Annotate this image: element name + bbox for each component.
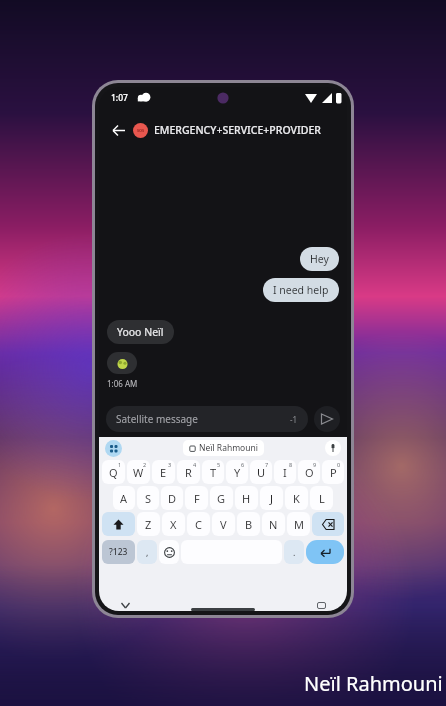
staticText: W xyxy=(133,465,144,480)
button[interactable]: I xyxy=(274,460,296,484)
button[interactable]: N xyxy=(262,512,285,536)
staticText: 1 xyxy=(118,461,122,468)
button[interactable]: C xyxy=(187,512,210,536)
button[interactable]: . xyxy=(284,540,304,564)
staticText: 9 xyxy=(313,461,317,468)
button[interactable]: E xyxy=(152,460,175,484)
staticText: Neïl Rahmouni xyxy=(199,442,258,454)
button[interactable]: A xyxy=(113,486,135,510)
button[interactable]: M xyxy=(287,512,310,536)
button[interactable]: T xyxy=(202,460,224,484)
staticText: J xyxy=(270,491,274,506)
button[interactable]: B xyxy=(237,512,260,536)
staticText: Hey xyxy=(310,252,329,266)
staticText: , xyxy=(146,546,149,558)
staticText: N xyxy=(269,517,278,532)
staticText: E xyxy=(160,465,167,480)
button[interactable]: Back xyxy=(105,117,131,143)
button[interactable]: Emoji message xyxy=(107,352,137,374)
staticText: 1:07 xyxy=(111,92,128,104)
button[interactable]: L xyxy=(310,486,333,510)
staticText: . xyxy=(293,546,296,558)
button[interactable]: Yooo Neïl xyxy=(107,320,174,344)
staticText: Neïl Rahmouni xyxy=(304,670,443,697)
staticText: I xyxy=(283,465,287,480)
button[interactable]: S xyxy=(137,486,159,510)
button[interactable]: ?123 xyxy=(102,540,135,564)
staticText: A xyxy=(120,491,128,506)
button[interactable]: I need help xyxy=(263,278,339,302)
button[interactable]: O xyxy=(298,460,320,484)
staticText: V xyxy=(220,517,227,532)
button[interactable]: Satellite message xyxy=(106,406,308,432)
button[interactable]: Z xyxy=(137,512,160,536)
button[interactable]: Switch keyboard xyxy=(313,597,329,611)
staticText: P xyxy=(330,465,337,480)
button[interactable]: R xyxy=(177,460,200,484)
button[interactable]: H xyxy=(235,486,258,510)
button[interactable]: F xyxy=(185,486,208,510)
staticText: F xyxy=(194,491,200,506)
staticText: H xyxy=(242,491,251,506)
staticText: C xyxy=(195,517,202,532)
staticText: 0 xyxy=(337,461,341,468)
staticText: 8 xyxy=(289,461,293,468)
button[interactable]: Emoji xyxy=(159,540,179,564)
staticText: 7 xyxy=(265,461,269,468)
staticText: S xyxy=(145,491,152,506)
button[interactable]: Y xyxy=(226,460,248,484)
staticText: G xyxy=(217,491,226,506)
staticText: Y xyxy=(234,465,241,480)
button[interactable]: Enter xyxy=(306,540,344,564)
button[interactable]: W xyxy=(127,460,150,484)
button[interactable]: P xyxy=(322,460,344,484)
button[interactable]: Backspace xyxy=(312,512,344,536)
staticText: X xyxy=(170,517,177,532)
button[interactable]: D xyxy=(161,486,183,510)
staticText: Q xyxy=(109,465,118,480)
staticText: Satellite message xyxy=(116,412,198,426)
button[interactable]: , xyxy=(137,540,157,564)
staticText: EMERGENCY+SERVICE+PROVIDER xyxy=(154,123,321,137)
staticText: -1 xyxy=(290,414,298,425)
button[interactable]: G xyxy=(210,486,233,510)
staticText: 1:06 AM xyxy=(107,378,138,389)
button[interactable]: Send xyxy=(314,406,340,432)
button[interactable]: Neïl Rahmouni xyxy=(183,440,264,456)
staticText: L xyxy=(319,491,325,506)
button[interactable]: Shift xyxy=(102,512,135,536)
staticText: SOS xyxy=(137,128,145,133)
button[interactable]: U xyxy=(250,460,272,484)
staticText: O xyxy=(305,465,314,480)
staticText: D xyxy=(168,491,177,506)
staticText: K xyxy=(293,491,300,506)
staticText: U xyxy=(257,465,266,480)
staticText: Yooo Neïl xyxy=(117,325,164,339)
staticText: T xyxy=(210,465,217,480)
staticText: 6 xyxy=(241,461,245,468)
staticText: M xyxy=(294,517,304,532)
button[interactable]: Hide keyboard xyxy=(117,597,133,611)
staticText: 2 xyxy=(143,461,147,468)
button[interactable]: V xyxy=(212,512,235,536)
button[interactable]: Hey xyxy=(300,247,339,271)
button[interactable]: K xyxy=(285,486,308,510)
button[interactable]: Q xyxy=(102,460,125,484)
staticText: 3 xyxy=(168,461,172,468)
button[interactable]: Toolbar xyxy=(105,440,122,457)
staticText: 5 xyxy=(217,461,221,468)
staticText: B xyxy=(245,517,253,532)
staticText: ?123 xyxy=(109,546,128,558)
staticText: Z xyxy=(145,517,152,532)
button[interactable]: X xyxy=(162,512,185,536)
button[interactable]: Voice input xyxy=(325,440,341,456)
button[interactable]: J xyxy=(260,486,283,510)
staticText: R xyxy=(185,465,192,480)
staticText: 4 xyxy=(193,461,197,468)
staticText: I need help xyxy=(273,283,329,297)
